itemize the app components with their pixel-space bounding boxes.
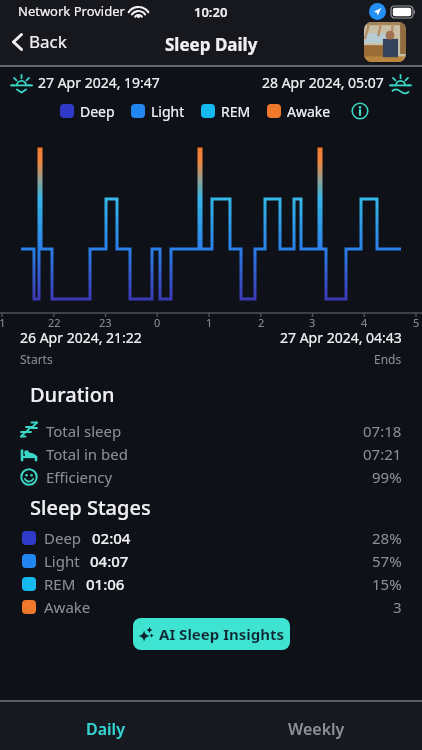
staticText: 04:07 (90, 551, 129, 571)
button[interactable]: Daily (0, 702, 211, 750)
staticText: 10:20 (194, 3, 228, 21)
staticText: 1 (206, 315, 213, 330)
staticText: 99% (372, 467, 402, 487)
staticText: Starts (20, 351, 53, 367)
staticText: 0 (154, 315, 161, 330)
button[interactable]: AI Sleep Insights (133, 618, 290, 650)
staticText: Duration (30, 381, 115, 408)
staticText: 21 (0, 315, 6, 330)
staticText: Deep (80, 102, 115, 121)
staticText: Ends (374, 351, 402, 367)
staticText: 01:06 (86, 574, 125, 594)
staticText: AI Sleep Insights (159, 624, 285, 644)
staticText: Efficiency (46, 467, 113, 487)
staticText: 28 Apr 2024, 05:07 (262, 73, 384, 92)
staticText: Deep (44, 528, 82, 548)
button[interactable] (351, 102, 369, 120)
staticText: 07:21 (363, 444, 402, 464)
staticText: 07:18 (363, 421, 402, 441)
staticText: 2 (258, 315, 265, 330)
staticText: Light (151, 102, 185, 121)
button[interactable]: Back (12, 30, 67, 53)
staticText: Light (44, 551, 80, 571)
staticText: 28% (372, 528, 402, 548)
staticText: 22 (48, 315, 61, 330)
staticText: 15% (372, 574, 402, 594)
button[interactable] (364, 22, 406, 62)
staticText: Awake (287, 102, 331, 121)
staticText: REM (44, 574, 76, 594)
staticText: 23 (99, 315, 112, 330)
staticText: Daily (86, 718, 125, 740)
staticText: 5 (413, 315, 420, 330)
staticText: Network Provider (18, 2, 125, 20)
staticText: 27 Apr 2024, 04:43 (280, 328, 402, 347)
staticText: 27 Apr 2024, 19:47 (38, 73, 160, 92)
staticText: 4 (361, 315, 368, 330)
staticText: 02:04 (92, 528, 131, 548)
staticText: Awake (44, 597, 91, 617)
staticText: Weekly (288, 718, 345, 740)
staticText: Sleep Stages (30, 494, 151, 521)
staticText: 57% (372, 551, 402, 571)
button[interactable]: Weekly (211, 702, 422, 750)
staticText: 26 Apr 2024, 21:22 (20, 328, 142, 347)
staticText: 3 (309, 315, 316, 330)
staticText: Total sleep (46, 421, 122, 441)
staticText: Back (29, 30, 67, 53)
staticText: Sleep Daily (165, 33, 258, 56)
staticText: 3 (393, 597, 402, 617)
staticText: REM (221, 102, 251, 121)
staticText: Total in bed (46, 444, 128, 464)
